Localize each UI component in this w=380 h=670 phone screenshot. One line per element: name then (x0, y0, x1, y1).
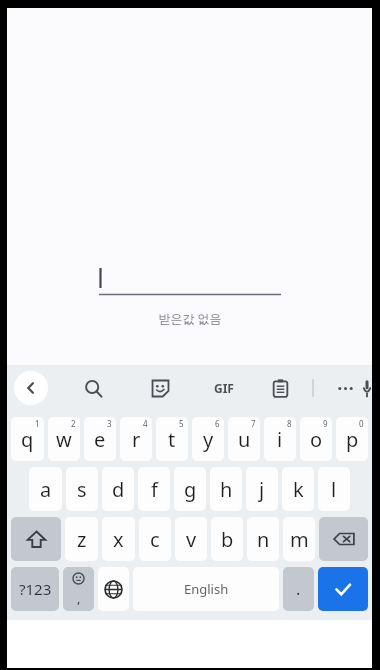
button[interactable]: GIF (207, 371, 241, 405)
button[interactable]: v (175, 517, 207, 561)
staticText: 받은값 없음 (158, 310, 222, 326)
staticText: h (220, 476, 233, 503)
staticText: 3 (107, 418, 112, 429)
staticText: v (186, 526, 197, 553)
button[interactable]: l (318, 467, 350, 511)
staticText: 6 (215, 418, 220, 429)
button[interactable]: ?123 (11, 567, 59, 611)
button[interactable]: t (156, 417, 188, 461)
button[interactable]: Voice input (362, 371, 372, 405)
button[interactable]: a (29, 467, 62, 511)
staticText: j (259, 476, 265, 503)
button[interactable]: Shift (11, 517, 61, 561)
button[interactable]: z (65, 517, 98, 561)
button[interactable]: d (102, 467, 134, 511)
staticText: c (150, 526, 160, 553)
button[interactable]: Backspace (319, 517, 368, 561)
staticText: 7 (251, 418, 256, 429)
button[interactable]: More options (328, 371, 362, 405)
button[interactable]: q (11, 417, 44, 461)
button[interactable]: j (246, 467, 278, 511)
staticText: s (77, 476, 87, 503)
staticText: p (346, 426, 359, 453)
button[interactable]: n (247, 517, 279, 561)
staticText: 2 (71, 418, 76, 429)
staticText: . (296, 578, 301, 600)
staticText: GIF (214, 380, 234, 396)
staticText: 0 (359, 418, 364, 429)
staticText: 9 (323, 418, 328, 429)
button[interactable]: s (66, 467, 98, 511)
button[interactable]: p (336, 417, 368, 461)
staticText: t (168, 426, 176, 453)
staticText: 8 (287, 418, 292, 429)
button[interactable]: k (282, 467, 314, 511)
staticText: a (40, 476, 52, 503)
button[interactable]: Emoji (63, 567, 94, 611)
staticText: 1 (35, 418, 40, 429)
button[interactable]: Stickers (143, 371, 177, 405)
button[interactable]: Enter (318, 567, 368, 611)
button[interactable]: o (300, 417, 332, 461)
staticText: u (238, 426, 251, 453)
button[interactable]: f (138, 467, 170, 511)
button[interactable]: y (192, 417, 224, 461)
button[interactable]: g (174, 467, 206, 511)
button[interactable]: i (264, 417, 296, 461)
button[interactable]: e (84, 417, 116, 461)
button[interactable]: b (211, 517, 243, 561)
staticText: English (184, 580, 229, 598)
staticText: w (56, 426, 72, 453)
button[interactable]: English (133, 567, 279, 611)
button[interactable]: u (228, 417, 260, 461)
staticText: o (310, 426, 323, 453)
button[interactable] (99, 264, 281, 296)
staticText: b (221, 526, 234, 553)
staticText: e (94, 426, 106, 453)
button[interactable]: . (283, 567, 314, 611)
button[interactable]: Back (14, 371, 48, 405)
staticText: r (132, 426, 141, 453)
button[interactable]: Clipboard (263, 371, 297, 405)
staticText: x (113, 526, 124, 553)
staticText: ?123 (19, 579, 52, 599)
button[interactable]: Change keyboard language (98, 567, 129, 611)
staticText: 4 (143, 418, 148, 429)
button[interactable]: x (102, 517, 135, 561)
staticText: z (77, 526, 87, 553)
staticText: i (277, 426, 283, 453)
staticText: l (331, 476, 337, 503)
button[interactable]: Search (76, 371, 110, 405)
staticText: d (112, 476, 125, 503)
button[interactable]: w (48, 417, 80, 461)
staticText: m (290, 526, 309, 553)
staticText: g (184, 476, 197, 503)
staticText: y (203, 426, 214, 453)
button[interactable]: r (120, 417, 152, 461)
button[interactable]: c (139, 517, 171, 561)
staticText: , (77, 589, 81, 607)
staticText: k (293, 476, 304, 503)
staticText: f (151, 476, 158, 503)
staticText: q (21, 426, 34, 453)
staticText: n (257, 526, 270, 553)
button[interactable]: m (283, 517, 315, 561)
staticText: 5 (179, 418, 184, 429)
button[interactable]: h (210, 467, 242, 511)
